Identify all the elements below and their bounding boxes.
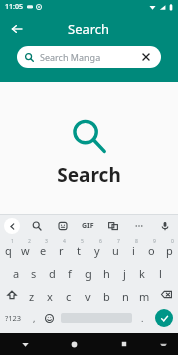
button[interactable]: 7 (106, 237, 124, 260)
staticText: q (5, 243, 12, 258)
staticText: f (68, 266, 72, 281)
button[interactable]: g (79, 260, 97, 283)
staticText: x (47, 289, 53, 304)
staticText: GIF (82, 221, 94, 231)
staticText: c (66, 289, 72, 304)
button[interactable]: l (151, 260, 169, 283)
button[interactable]: 0 (160, 237, 178, 260)
staticText: a (13, 266, 20, 281)
button[interactable]: Search (28, 217, 46, 235)
staticText: b (103, 289, 110, 304)
button[interactable]: 4 (52, 237, 70, 260)
button[interactable]: Close toolbar (4, 218, 20, 234)
button[interactable]: Translate (104, 217, 122, 235)
button[interactable]: 1 (0, 237, 17, 260)
staticText: 9 (153, 238, 156, 245)
staticText: n (122, 289, 129, 304)
staticText: Search (57, 162, 121, 188)
button[interactable]: j (115, 260, 133, 283)
button[interactable]: Shift (0, 283, 23, 306)
button[interactable]: More options (130, 217, 148, 235)
staticText: p (166, 243, 173, 258)
button[interactable]: Hide keyboard (148, 333, 178, 355)
button[interactable]: 8 (124, 237, 142, 260)
staticText: j (123, 266, 126, 281)
button[interactable]: GIF (80, 221, 96, 231)
button[interactable]: v (78, 283, 97, 306)
staticText: v (85, 289, 91, 304)
staticText: , (33, 312, 36, 324)
staticText: z (29, 289, 35, 304)
button[interactable]: Comma (27, 306, 41, 330)
button[interactable]: f (61, 260, 79, 283)
button[interactable]: Emoji (41, 306, 58, 330)
staticText: u (112, 243, 119, 258)
staticText: g (85, 266, 92, 281)
button[interactable]: ?123 (0, 306, 27, 330)
staticText: l (159, 266, 162, 281)
button[interactable]: x (41, 283, 59, 306)
button[interactable]: 3 (34, 237, 52, 260)
staticText: 5 (81, 238, 84, 245)
staticText: . (141, 312, 144, 324)
button[interactable]: s (25, 260, 43, 283)
staticText: 7 (117, 238, 120, 245)
button[interactable]: a (8, 260, 25, 283)
staticText: 2 (28, 238, 31, 245)
staticText: w (21, 243, 30, 258)
button[interactable]: Home (50, 333, 99, 355)
button[interactable]: z (23, 283, 41, 306)
staticText: 1 (11, 238, 14, 245)
button[interactable]: Recents (99, 333, 148, 355)
staticText: k (139, 266, 145, 281)
button[interactable]: b (97, 283, 116, 306)
staticText: t (77, 243, 81, 258)
button[interactable]: Backspace (154, 283, 178, 306)
button[interactable]: Stickers (54, 217, 72, 235)
button[interactable]: 6 (88, 237, 106, 260)
staticText: 8 (135, 238, 138, 245)
button[interactable]: 9 (142, 237, 160, 260)
staticText: i (132, 243, 135, 258)
button[interactable]: m (135, 283, 154, 306)
button[interactable]: c (59, 283, 78, 306)
staticText: m (139, 289, 150, 304)
staticText: 6 (99, 238, 102, 245)
button[interactable]: Voice input (156, 217, 174, 235)
staticText: o (148, 243, 155, 258)
staticText: y (94, 243, 100, 258)
staticText: r (59, 243, 64, 258)
staticText: 11:05 (5, 2, 23, 12)
button[interactable]: Back (0, 333, 50, 355)
staticText: s (31, 266, 37, 281)
button[interactable]: 2 (17, 237, 34, 260)
staticText: 4 (63, 238, 66, 245)
staticText: ?123 (5, 313, 22, 323)
button[interactable]: Back (4, 16, 30, 42)
staticText: 0 (171, 238, 174, 245)
staticText: Search (68, 20, 110, 38)
staticText: d (49, 266, 56, 281)
staticText: Search Manga (40, 51, 101, 63)
button[interactable]: n (116, 283, 135, 306)
button[interactable]: Submit search (155, 309, 173, 327)
button[interactable]: d (43, 260, 61, 283)
button[interactable]: h (97, 260, 115, 283)
staticText: h (103, 266, 110, 281)
button[interactable]: Search Manga (17, 46, 161, 68)
button[interactable]: Period (135, 306, 150, 330)
staticText: 3 (45, 238, 48, 245)
button[interactable]: 5 (70, 237, 88, 260)
button[interactable]: k (133, 260, 151, 283)
button[interactable]: Clear (139, 50, 153, 64)
staticText: e (40, 243, 47, 258)
